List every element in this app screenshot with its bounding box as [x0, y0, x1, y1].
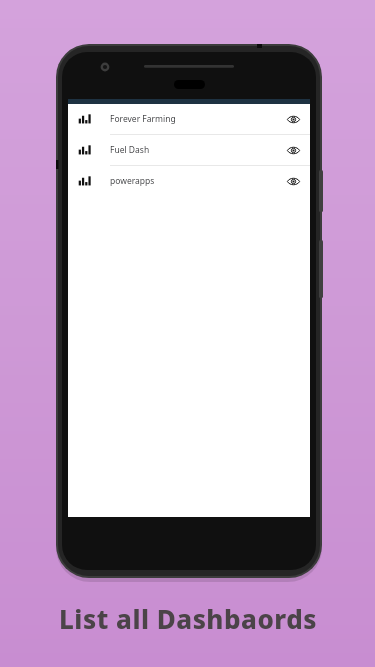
button[interactable]: powerapps	[68, 166, 310, 196]
staticText: List all Dashbaords	[59, 601, 317, 636]
staticText: Forever Farming	[110, 113, 280, 125]
button[interactable]: Preview dashboard	[280, 137, 306, 163]
button[interactable]: Preview dashboard	[280, 106, 306, 132]
staticText: Fuel Dash	[110, 144, 280, 156]
button[interactable]: Preview dashboard	[280, 168, 306, 194]
button[interactable]: Forever Farming	[68, 104, 310, 134]
button[interactable]: Fuel Dash	[68, 135, 310, 165]
staticText: powerapps	[110, 175, 280, 187]
